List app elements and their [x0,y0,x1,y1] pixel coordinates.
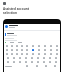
button[interactable] [35,60,41,64]
button[interactable] [48,44,54,48]
button[interactable] [22,64,32,68]
button[interactable] [11,60,17,64]
button[interactable] [5,25,59,28]
button[interactable] [9,52,14,56]
button[interactable] [41,60,47,64]
button[interactable] [42,48,48,52]
button[interactable] [35,56,41,60]
button[interactable] [36,48,42,52]
button[interactable] [4,48,9,52]
button[interactable] [29,60,35,64]
button[interactable] [19,52,24,56]
button[interactable] [14,44,19,48]
button[interactable] [17,60,23,64]
button[interactable] [36,44,42,48]
button[interactable] [54,52,60,56]
button[interactable] [4,44,9,48]
button[interactable] [54,44,60,48]
button[interactable] [47,60,53,64]
button[interactable] [54,48,60,52]
button[interactable] [11,56,17,60]
button[interactable] [41,64,50,68]
button[interactable] [24,52,30,56]
button[interactable] [19,48,24,52]
button[interactable] [48,48,54,52]
button[interactable] [53,60,59,64]
other: App logo [3,2,6,5]
button[interactable] [29,56,35,60]
button[interactable] [14,52,19,56]
button[interactable] [24,48,30,52]
button[interactable] [42,44,48,48]
button[interactable] [30,52,36,56]
button[interactable] [30,44,36,48]
button[interactable] [23,56,29,60]
button[interactable] [9,48,14,52]
button[interactable] [19,44,24,48]
button[interactable] [4,52,9,56]
button[interactable] [42,52,48,56]
button[interactable] [24,44,30,48]
button[interactable] [23,60,29,64]
button[interactable] [41,56,47,60]
button[interactable] [48,52,54,56]
button[interactable] [17,56,23,60]
button[interactable] [36,52,42,56]
button[interactable] [5,60,11,64]
staticText: Assisted account selection [3,7,30,15]
button[interactable] [50,64,59,68]
button[interactable] [5,56,11,60]
button[interactable] [9,44,14,48]
button[interactable] [30,48,36,52]
button[interactable] [47,56,53,60]
button[interactable] [53,56,59,60]
button[interactable] [32,64,41,68]
button[interactable] [14,48,19,52]
button[interactable] [5,66,12,67]
